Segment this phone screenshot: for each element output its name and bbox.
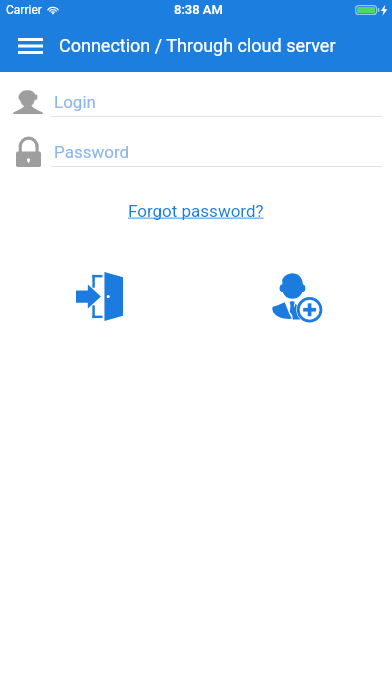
- staticText: 8:38 AM: [174, 2, 223, 17]
- button[interactable]: Sign in: [76, 272, 123, 321]
- button[interactable]: Open navigation menu: [6, 22, 54, 70]
- staticText: Password: [54, 142, 130, 162]
- staticText: Connection / Through cloud server: [59, 35, 336, 56]
- button[interactable]: Forgot password?: [120, 198, 272, 224]
- staticText: Login: [54, 92, 96, 112]
- staticText: Carrier: [6, 3, 42, 17]
- button[interactable]: Register new user: [272, 273, 321, 322]
